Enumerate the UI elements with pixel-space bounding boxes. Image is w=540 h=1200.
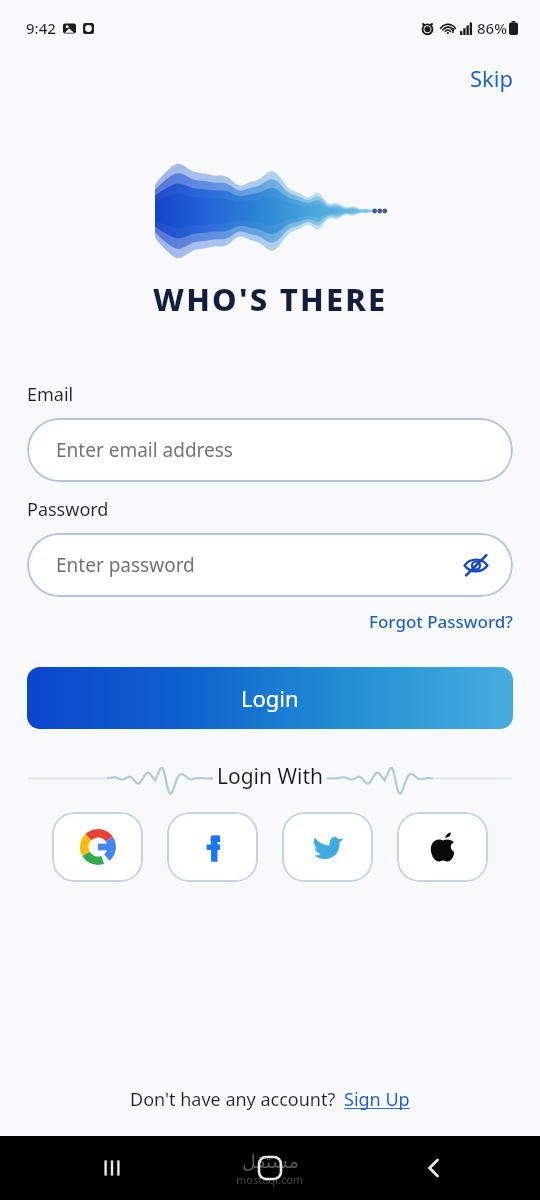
button[interactable]: Forgot Password?	[363, 607, 519, 636]
staticText: Skip	[470, 63, 514, 93]
button[interactable]: Recent apps	[88, 1144, 136, 1192]
button[interactable]: Sign in with Twitter	[282, 812, 373, 882]
staticText: Sign Up	[344, 1087, 410, 1112]
button[interactable]: Sign in with Apple	[397, 812, 488, 882]
staticText: Email	[27, 382, 74, 407]
staticText: مستقل	[242, 1150, 299, 1172]
button[interactable]: Sign in with Facebook	[167, 812, 258, 882]
staticText: Forgot Password?	[369, 610, 513, 633]
staticText: 9:42	[26, 18, 56, 38]
button[interactable]: Home	[246, 1144, 294, 1192]
button[interactable]: Sign in with Google	[52, 812, 143, 882]
button[interactable]: Back	[410, 1144, 458, 1192]
staticText: mostaql.com	[236, 1172, 304, 1187]
staticText: Login With	[217, 762, 323, 791]
staticText: WHO'S THERE	[153, 278, 388, 320]
staticText: Enter email address	[56, 437, 233, 463]
staticText: Login	[241, 683, 299, 713]
staticText: 86%	[477, 18, 507, 38]
button[interactable]: Login	[27, 667, 513, 729]
staticText: Don't have any account?	[130, 1087, 336, 1112]
button[interactable]: Enter email address	[27, 418, 513, 482]
button[interactable]: Show password	[457, 546, 495, 584]
button[interactable]: Skip	[458, 59, 526, 97]
button[interactable]: Enter password	[27, 533, 513, 597]
staticText: Password	[27, 497, 109, 522]
staticText: Enter password	[56, 552, 195, 578]
button[interactable]: Sign Up	[344, 1087, 410, 1112]
